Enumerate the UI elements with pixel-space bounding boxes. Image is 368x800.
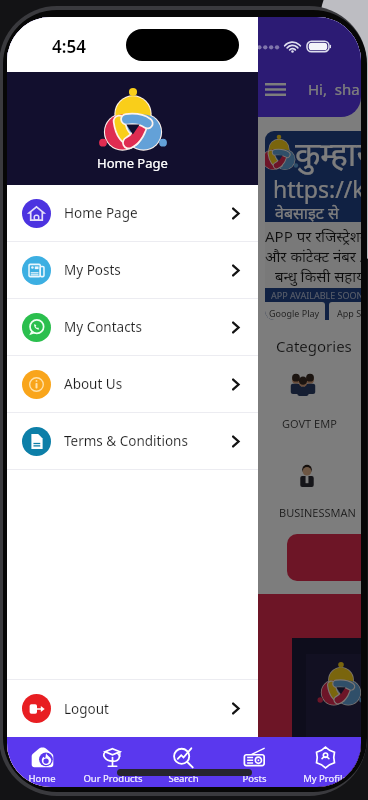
button[interactable]: Logout — [7, 680, 258, 737]
button[interactable]: Our Products — [77, 737, 148, 787]
staticText: My Profile — [303, 772, 348, 785]
button[interactable]: Home — [7, 737, 77, 787]
staticText: App S — [337, 307, 361, 319]
button[interactable]: Home Page — [7, 185, 258, 241]
button[interactable]: Terms & Conditions — [7, 413, 258, 469]
staticText: और कांटेक्ट नंबर APP — [265, 246, 361, 266]
staticText: APP AVAILABLE SOON O — [271, 289, 361, 301]
staticText: Hi, shankar — [308, 79, 361, 99]
staticText: Home Page — [97, 154, 168, 172]
staticText: Search — [168, 772, 199, 785]
button[interactable]: Search — [148, 737, 219, 787]
staticText: Posts — [242, 772, 267, 785]
staticText: Home Page — [64, 204, 138, 222]
staticText: BUSINESSMAN — [279, 505, 356, 520]
staticText: GOVT EMP — [282, 416, 337, 431]
button[interactable]: Posts — [219, 737, 290, 787]
staticText: About Us — [64, 375, 123, 393]
staticText: My Contacts — [64, 318, 142, 336]
staticText: Terms & Conditions — [64, 432, 188, 450]
staticText: My Posts — [64, 261, 121, 279]
button[interactable]: My Posts — [7, 242, 258, 298]
staticText: Home — [28, 772, 56, 785]
button[interactable]: My Profile — [290, 737, 361, 787]
staticText: Logout — [64, 700, 109, 718]
staticText: 4:54 — [52, 35, 86, 58]
staticText: Categories — [276, 336, 352, 356]
staticText: Our Products — [83, 772, 143, 785]
staticText: कुम्हार — [295, 131, 361, 176]
button[interactable]: My Contacts — [7, 299, 258, 355]
staticText: वेबसाइट से — [275, 202, 339, 224]
button[interactable]: About Us — [7, 356, 258, 412]
staticText: बन्धु किसी सहायत — [275, 266, 361, 286]
staticText: APP पर रजिस्ट्रेशन के — [265, 226, 361, 246]
staticText: https://kum — [273, 173, 361, 204]
staticText: Google Play — [269, 307, 320, 319]
